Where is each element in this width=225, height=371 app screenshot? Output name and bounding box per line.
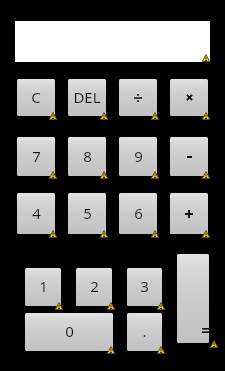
button[interactable]: C bbox=[17, 79, 55, 116]
staticText: 8 bbox=[83, 146, 92, 166]
staticText: 0 bbox=[65, 321, 74, 341]
staticText: 9 bbox=[134, 146, 143, 166]
button[interactable]: 1 bbox=[25, 268, 61, 306]
button[interactable]: 0 bbox=[25, 313, 113, 351]
button[interactable]: 7 bbox=[17, 137, 55, 176]
button[interactable]: 3 bbox=[127, 268, 162, 306]
button[interactable]: Plus bbox=[170, 193, 208, 234]
button[interactable]: DEL bbox=[68, 79, 106, 116]
button[interactable]: 6 bbox=[119, 193, 157, 234]
button[interactable]: Divide bbox=[119, 79, 157, 116]
button[interactable]: 9 bbox=[119, 137, 157, 176]
staticText: 1 bbox=[39, 276, 48, 296]
button[interactable]: Multiply bbox=[170, 79, 208, 116]
button[interactable]: 2 bbox=[76, 268, 112, 306]
staticText: 3 bbox=[140, 276, 149, 296]
button[interactable]: 5 bbox=[68, 193, 106, 234]
button[interactable]: Expression display bbox=[15, 21, 210, 62]
staticText: . bbox=[142, 321, 147, 341]
button[interactable]: Minus bbox=[170, 137, 208, 176]
staticText: 4 bbox=[32, 203, 41, 223]
staticText: C bbox=[31, 87, 41, 107]
staticText: DEL bbox=[73, 87, 101, 107]
staticText: 7 bbox=[32, 146, 41, 166]
button[interactable]: 8 bbox=[68, 137, 106, 176]
button[interactable]: Equals bbox=[177, 254, 209, 343]
button[interactable]: 4 bbox=[17, 193, 55, 234]
staticText: 6 bbox=[134, 203, 143, 223]
button[interactable]: . bbox=[127, 313, 162, 351]
staticText: 5 bbox=[83, 203, 92, 223]
staticText: 2 bbox=[90, 276, 99, 296]
